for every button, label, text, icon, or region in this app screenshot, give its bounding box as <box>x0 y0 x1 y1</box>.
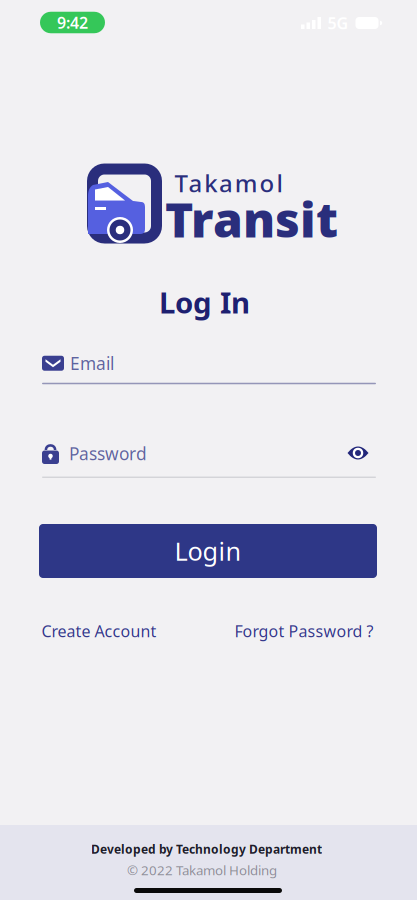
staticText: Developed by Technology Department <box>91 841 322 857</box>
staticText: Email <box>70 352 114 375</box>
staticText: Password <box>69 442 147 465</box>
button[interactable]: Email <box>42 352 376 384</box>
button[interactable]: Login <box>39 524 377 578</box>
staticText: Takamol <box>175 167 282 199</box>
button[interactable] <box>347 444 368 461</box>
staticText: Transit <box>165 187 338 251</box>
button[interactable]: Password <box>42 442 376 478</box>
button[interactable]: Forgot Password ? <box>234 620 373 642</box>
button[interactable]: Create Account <box>41 620 156 642</box>
staticText: 5G <box>327 12 348 34</box>
staticText: 9:42 <box>57 12 88 33</box>
staticText: © 2022 Takamol Holding <box>127 861 277 879</box>
staticText: Log In <box>159 282 250 321</box>
staticText: Forgot Password ? <box>234 620 373 642</box>
staticText: Create Account <box>41 620 156 642</box>
staticText: Login <box>174 534 241 568</box>
